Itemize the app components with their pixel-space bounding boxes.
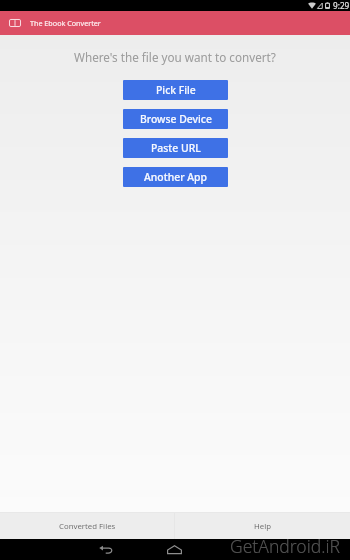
button[interactable]: Pick File [123, 80, 228, 100]
button[interactable]: Back [73, 539, 139, 560]
staticText: Where's the file you want to convert? [0, 49, 350, 65]
button[interactable]: Help [175, 513, 350, 539]
button[interactable]: Recents [209, 539, 271, 560]
staticText: GetAndroid.iR [230, 534, 341, 558]
button[interactable]: Another App [123, 167, 228, 187]
staticText: The Ebook Converter [30, 18, 101, 28]
button[interactable]: Paste URL [123, 138, 228, 158]
staticText: 9:29 [333, 0, 350, 11]
button[interactable]: Browse Device [123, 109, 228, 129]
staticText: Pick File [156, 83, 196, 97]
button[interactable]: Home [139, 539, 209, 560]
staticText: Browse Device [140, 112, 212, 126]
staticText: Help [254, 521, 271, 532]
staticText: Converted Files [59, 521, 116, 532]
staticText: Paste URL [151, 141, 201, 155]
staticText: Another App [144, 170, 207, 184]
button[interactable]: Converted Files [0, 513, 174, 539]
